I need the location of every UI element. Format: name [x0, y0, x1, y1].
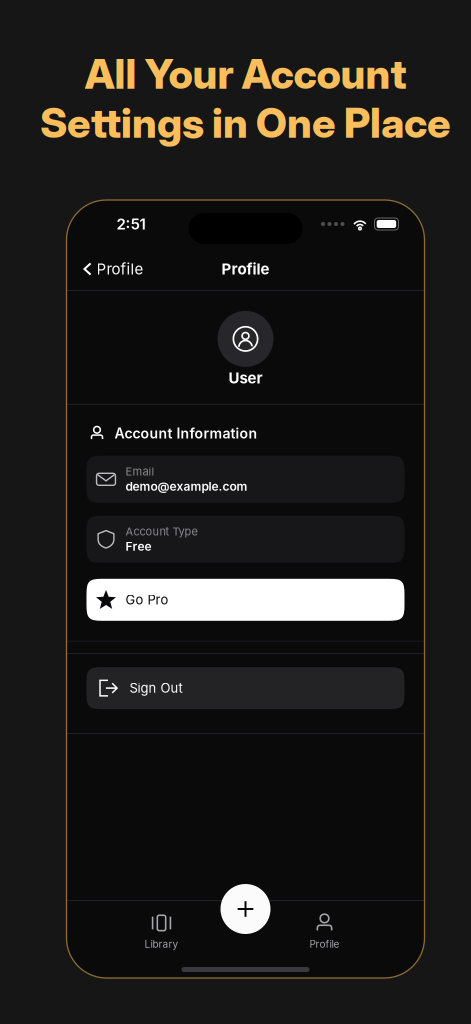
- staticText: Settings in One Place: [40, 98, 451, 148]
- button[interactable]: Library: [116, 909, 206, 953]
- staticText: User: [228, 369, 262, 387]
- staticText: 2:51: [116, 215, 145, 233]
- button[interactable]: Email: [86, 456, 404, 503]
- staticText: Profile: [221, 260, 269, 278]
- staticText: Free: [125, 539, 151, 554]
- staticText: demo@example.com: [125, 479, 247, 494]
- staticText: Account Information: [114, 425, 257, 442]
- staticText: Library: [144, 938, 178, 950]
- staticText: All Your Account: [84, 49, 406, 99]
- staticText: Profile: [96, 260, 143, 278]
- button[interactable]: Profile: [279, 909, 369, 953]
- button[interactable]: Profile: [66, 250, 153, 288]
- staticText: Go Pro: [125, 592, 168, 608]
- staticText: Email: [125, 465, 154, 478]
- button[interactable]: Account Type: [86, 516, 404, 563]
- staticText: Account Type: [125, 525, 197, 538]
- staticText: Profile: [309, 938, 339, 950]
- staticText: Sign Out: [129, 680, 182, 696]
- button[interactable]: New item: [220, 884, 270, 934]
- button[interactable]: Go Pro: [86, 579, 404, 621]
- button[interactable]: Sign Out: [86, 667, 404, 709]
